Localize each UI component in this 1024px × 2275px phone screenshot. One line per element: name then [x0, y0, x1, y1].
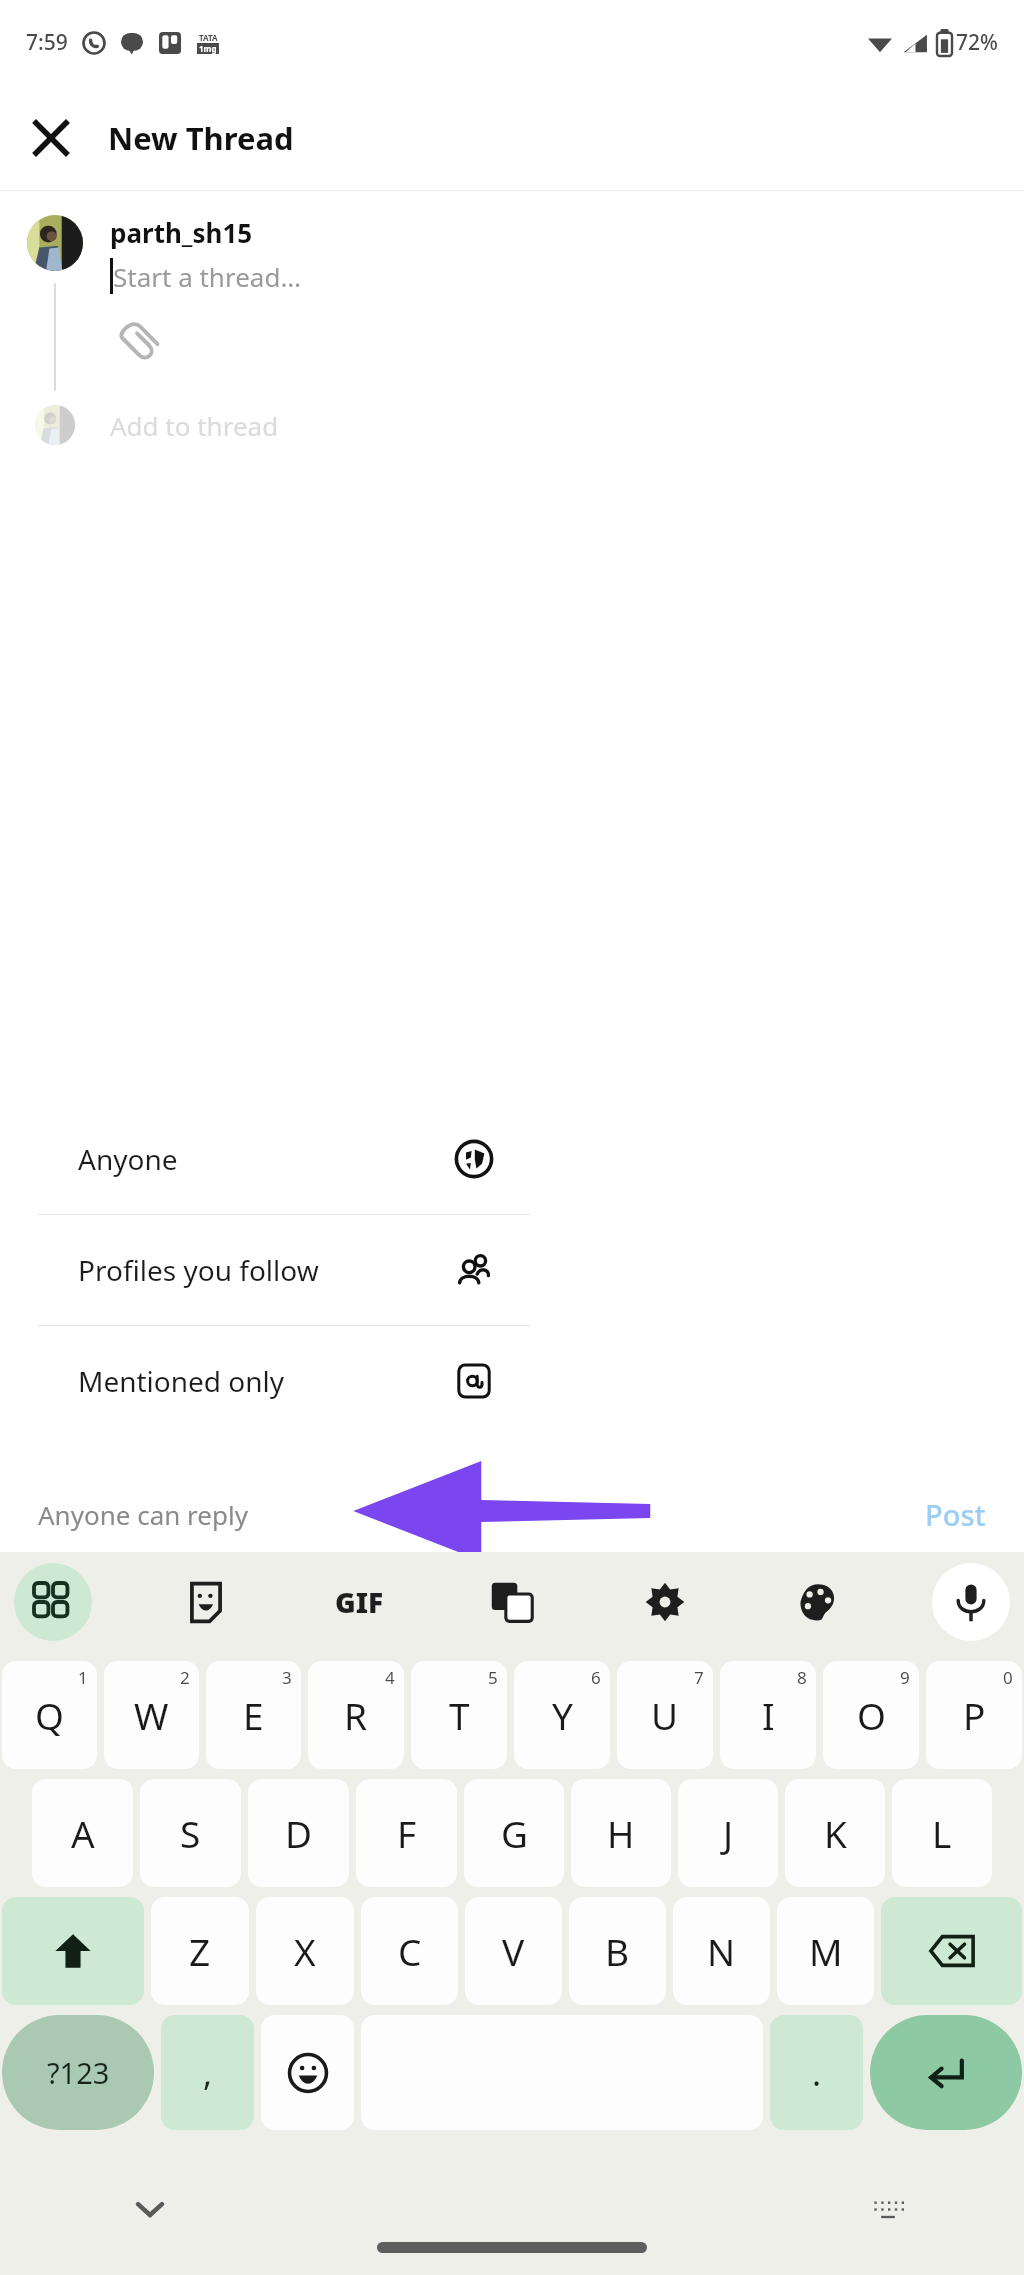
staticText: .: [812, 2050, 822, 2096]
button[interactable]: K: [785, 1779, 885, 1887]
button[interactable]: Translate: [473, 1563, 551, 1641]
staticText: TATA: [199, 32, 218, 43]
staticText: 1mg: [199, 43, 217, 54]
staticText: G: [501, 1808, 528, 1858]
staticText: 72%: [956, 28, 998, 57]
staticText: P: [963, 1690, 986, 1740]
staticText: I: [762, 1690, 775, 1740]
staticText: H: [607, 1808, 635, 1858]
staticText: A: [71, 1808, 95, 1858]
staticText: Z: [189, 1926, 211, 1976]
button[interactable]: D: [248, 1779, 349, 1887]
button[interactable]: ,: [161, 2015, 254, 2130]
staticText: Profiles you follow: [78, 1251, 319, 1289]
button[interactable]: P: [926, 1661, 1022, 1769]
staticText: 2: [180, 1666, 190, 1689]
button[interactable]: GIF: [320, 1563, 398, 1641]
button[interactable]: N: [673, 1897, 770, 2005]
button[interactable]: Backspace: [881, 1897, 1022, 2005]
staticText: K: [824, 1808, 847, 1858]
button[interactable]: Theme: [779, 1563, 857, 1641]
button[interactable]: Anyone: [38, 1104, 530, 1214]
staticText: 0: [1003, 1666, 1013, 1689]
staticText: 6: [591, 1666, 601, 1689]
button[interactable]: J: [678, 1779, 778, 1887]
staticText: ,: [203, 2050, 213, 2096]
staticText: 8: [797, 1666, 807, 1689]
staticText: N: [707, 1926, 736, 1976]
button[interactable]: E: [206, 1661, 301, 1769]
staticText: 5: [488, 1666, 498, 1689]
button[interactable]: S: [140, 1779, 241, 1887]
staticText: 1: [78, 1666, 88, 1689]
button[interactable]: Profiles you follow: [38, 1215, 530, 1325]
staticText: D: [285, 1808, 313, 1858]
button[interactable]: Q: [2, 1661, 97, 1769]
button[interactable]: X: [256, 1897, 354, 2005]
button[interactable]: Anyone can reply: [38, 1497, 248, 1532]
staticText: U: [651, 1690, 679, 1740]
staticText: L: [932, 1808, 952, 1858]
button[interactable]: Stickers: [167, 1563, 245, 1641]
button[interactable]: Shift: [2, 1897, 144, 2005]
staticText: T: [449, 1690, 470, 1740]
button[interactable]: Y: [514, 1661, 610, 1769]
button[interactable]: V: [465, 1897, 562, 2005]
button[interactable]: Settings: [626, 1563, 704, 1641]
staticText: B: [605, 1926, 630, 1976]
button[interactable]: H: [571, 1779, 671, 1887]
staticText: GIF: [335, 1583, 384, 1621]
staticText: Y: [552, 1690, 573, 1740]
staticText: V: [502, 1926, 525, 1976]
button[interactable]: B: [569, 1897, 666, 2005]
button[interactable]: Mentioned only: [38, 1326, 530, 1436]
button[interactable]: W: [104, 1661, 199, 1769]
staticText: R: [344, 1690, 368, 1740]
button[interactable]: F: [356, 1779, 457, 1887]
staticText: parth_sh15: [110, 215, 253, 250]
staticText: 7: [694, 1666, 704, 1689]
staticText: C: [398, 1926, 422, 1976]
staticText: Add to thread: [110, 408, 279, 443]
button[interactable]: C: [361, 1897, 458, 2005]
staticText: 9: [900, 1666, 910, 1689]
button[interactable]: Emoji: [261, 2015, 354, 2130]
staticText: New Thread: [108, 117, 294, 159]
button[interactable]: .: [770, 2015, 863, 2130]
staticText: Mentioned only: [78, 1362, 285, 1400]
button[interactable]: M: [777, 1897, 874, 2005]
button[interactable]: T: [411, 1661, 507, 1769]
button[interactable]: Voice input: [932, 1563, 1010, 1641]
staticText: O: [857, 1690, 886, 1740]
staticText: Q: [35, 1690, 64, 1740]
button[interactable]: Post: [925, 1495, 986, 1534]
button[interactable]: Z: [151, 1897, 249, 2005]
button[interactable]: Apps: [14, 1563, 92, 1641]
button[interactable]: A: [32, 1779, 133, 1887]
staticText: 4: [385, 1666, 395, 1689]
button[interactable]: Close: [20, 107, 82, 169]
staticText: ?123: [47, 2053, 110, 2092]
button[interactable]: I: [720, 1661, 816, 1769]
staticText: S: [180, 1808, 201, 1858]
button[interactable]: Attach: [110, 316, 168, 374]
button[interactable]: Change keyboard: [856, 2177, 920, 2241]
button[interactable]: L: [892, 1779, 992, 1887]
button[interactable]: ?123: [2, 2015, 154, 2130]
button[interactable]: Hide keyboard: [118, 2177, 182, 2241]
button[interactable]: Add to thread: [0, 405, 1024, 445]
staticText: 7:59: [26, 28, 68, 57]
staticText: M: [809, 1926, 843, 1976]
staticText: J: [723, 1808, 734, 1858]
staticText: W: [134, 1690, 169, 1740]
button[interactable]: Enter: [870, 2015, 1022, 2130]
staticText: 3: [282, 1666, 292, 1689]
button[interactable]: O: [823, 1661, 919, 1769]
button[interactable]: U: [617, 1661, 713, 1769]
staticText: E: [243, 1690, 264, 1740]
button[interactable]: R: [308, 1661, 404, 1769]
button[interactable]: G: [464, 1779, 564, 1887]
staticText: F: [397, 1808, 417, 1858]
staticText: Start a thread…: [113, 259, 301, 294]
